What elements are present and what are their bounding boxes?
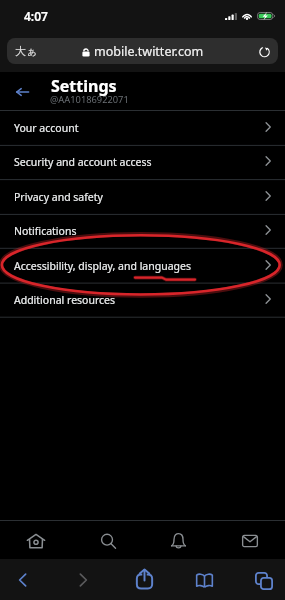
- staticText: Additional resources: [14, 293, 265, 307]
- button[interactable]: Home: [0, 521, 72, 559]
- button[interactable]: Security and account access: [0, 145, 285, 179]
- button[interactable]: Notifications: [143, 521, 214, 559]
- staticText: Your account: [14, 121, 265, 135]
- button[interactable]: Share: [122, 559, 166, 599]
- button[interactable]: Tabs: [242, 561, 285, 600]
- button[interactable]: Privacy and safety: [0, 179, 285, 214]
- staticText: Notifications: [14, 224, 265, 238]
- button[interactable]: Notifications: [0, 214, 285, 248]
- button[interactable]: Search: [72, 521, 143, 559]
- button[interactable]: Messages: [214, 521, 285, 559]
- button[interactable]: Bookmarks: [182, 560, 226, 600]
- button[interactable]: Accessibility, display, and languages: [0, 248, 285, 283]
- button[interactable]: Your account: [0, 110, 285, 145]
- staticText: Accessibility, display, and languages: [14, 259, 265, 273]
- staticText: Privacy and safety: [14, 190, 265, 204]
- staticText: @AA10186922071: [50, 93, 129, 106]
- button[interactable]: Additional resources: [0, 283, 285, 317]
- staticText: Security and account access: [14, 155, 265, 169]
- staticText: Settings: [51, 75, 117, 97]
- button[interactable]: Back: [0, 560, 44, 600]
- staticText: 大ぁ: [15, 44, 38, 58]
- button[interactable]: 大ぁ: [7, 38, 278, 64]
- button[interactable]: Forward: [61, 560, 105, 600]
- staticText: 4:07: [24, 8, 48, 24]
- staticText: mobile.twitter.com: [94, 43, 204, 60]
- other: Reload: [258, 45, 271, 58]
- button[interactable]: Back: [11, 80, 34, 103]
